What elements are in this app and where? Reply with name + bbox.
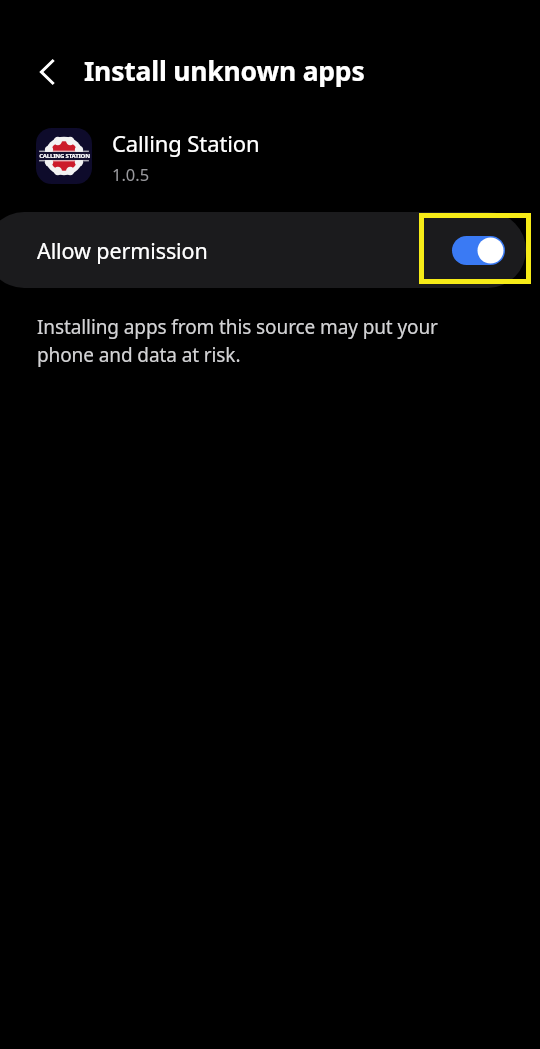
staticText: Install unknown apps <box>84 53 365 89</box>
button[interactable]: Back <box>22 47 72 97</box>
staticText: Installing apps from this source may put… <box>37 314 485 368</box>
staticText: CALLING STATION <box>39 152 90 160</box>
staticText: Calling Station <box>112 128 260 158</box>
button[interactable] <box>0 212 526 288</box>
staticText: 1.0.5 <box>112 163 150 185</box>
button[interactable]: Allow permission toggle, on <box>452 236 505 265</box>
staticText: Allow permission <box>37 236 208 265</box>
